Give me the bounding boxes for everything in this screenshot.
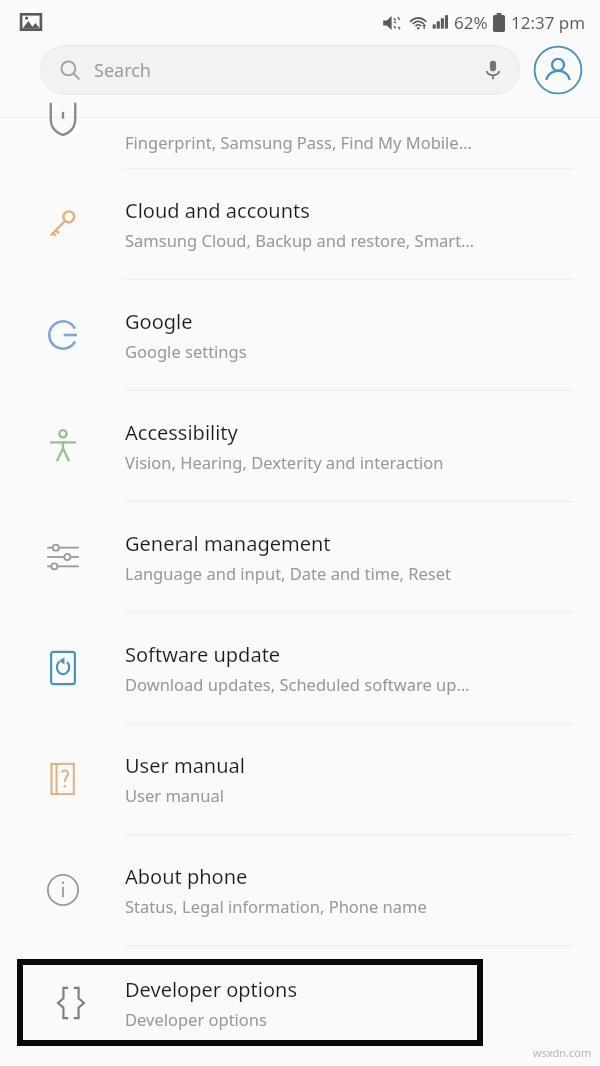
button[interactable]: Cloud and accounts [0,169,600,279]
staticText: User manual [125,752,245,779]
button[interactable]: Developer options [17,959,483,1046]
button[interactable]: Voice search [482,59,504,81]
staticText: Search [94,58,482,83]
button[interactable]: About phone [0,835,600,945]
staticText: Status, Legal information, Phone name [125,895,427,917]
button[interactable]: Account [532,44,584,96]
button[interactable]: Software update [0,613,600,723]
staticText: Cloud and accounts [125,197,310,224]
button[interactable]: User manual [0,724,600,834]
button[interactable]: Search [40,45,520,95]
staticText: Developer options [125,1008,267,1030]
staticText: Accessibility [125,419,238,446]
staticText: General management [125,530,331,557]
staticText: Samsung Cloud, Backup and restore, Smart… [125,229,475,251]
staticText: About phone [125,863,248,890]
staticText: User manual [125,784,224,806]
button[interactable]: Fingerprint, Samsung Pass, Find My Mobil… [0,118,600,168]
staticText: Vision, Hearing, Dexterity and interacti… [125,451,444,473]
staticText: Language and input, Date and time, Reset [125,562,451,584]
staticText: Fingerprint, Samsung Pass, Find My Mobil… [125,131,472,153]
button[interactable]: Google [0,280,600,390]
staticText: 12:37 pm [511,11,586,34]
staticText: Download updates, Scheduled software up… [125,673,470,695]
button[interactable]: Accessibility [0,391,600,501]
staticText: wsxdn.com [533,1045,592,1060]
staticText: Developer options [125,976,298,1003]
staticText: Google settings [125,340,247,362]
staticText: 62% [454,11,488,34]
staticText: Google [125,308,193,335]
staticText: Software update [125,641,281,668]
button[interactable]: General management [0,502,600,612]
